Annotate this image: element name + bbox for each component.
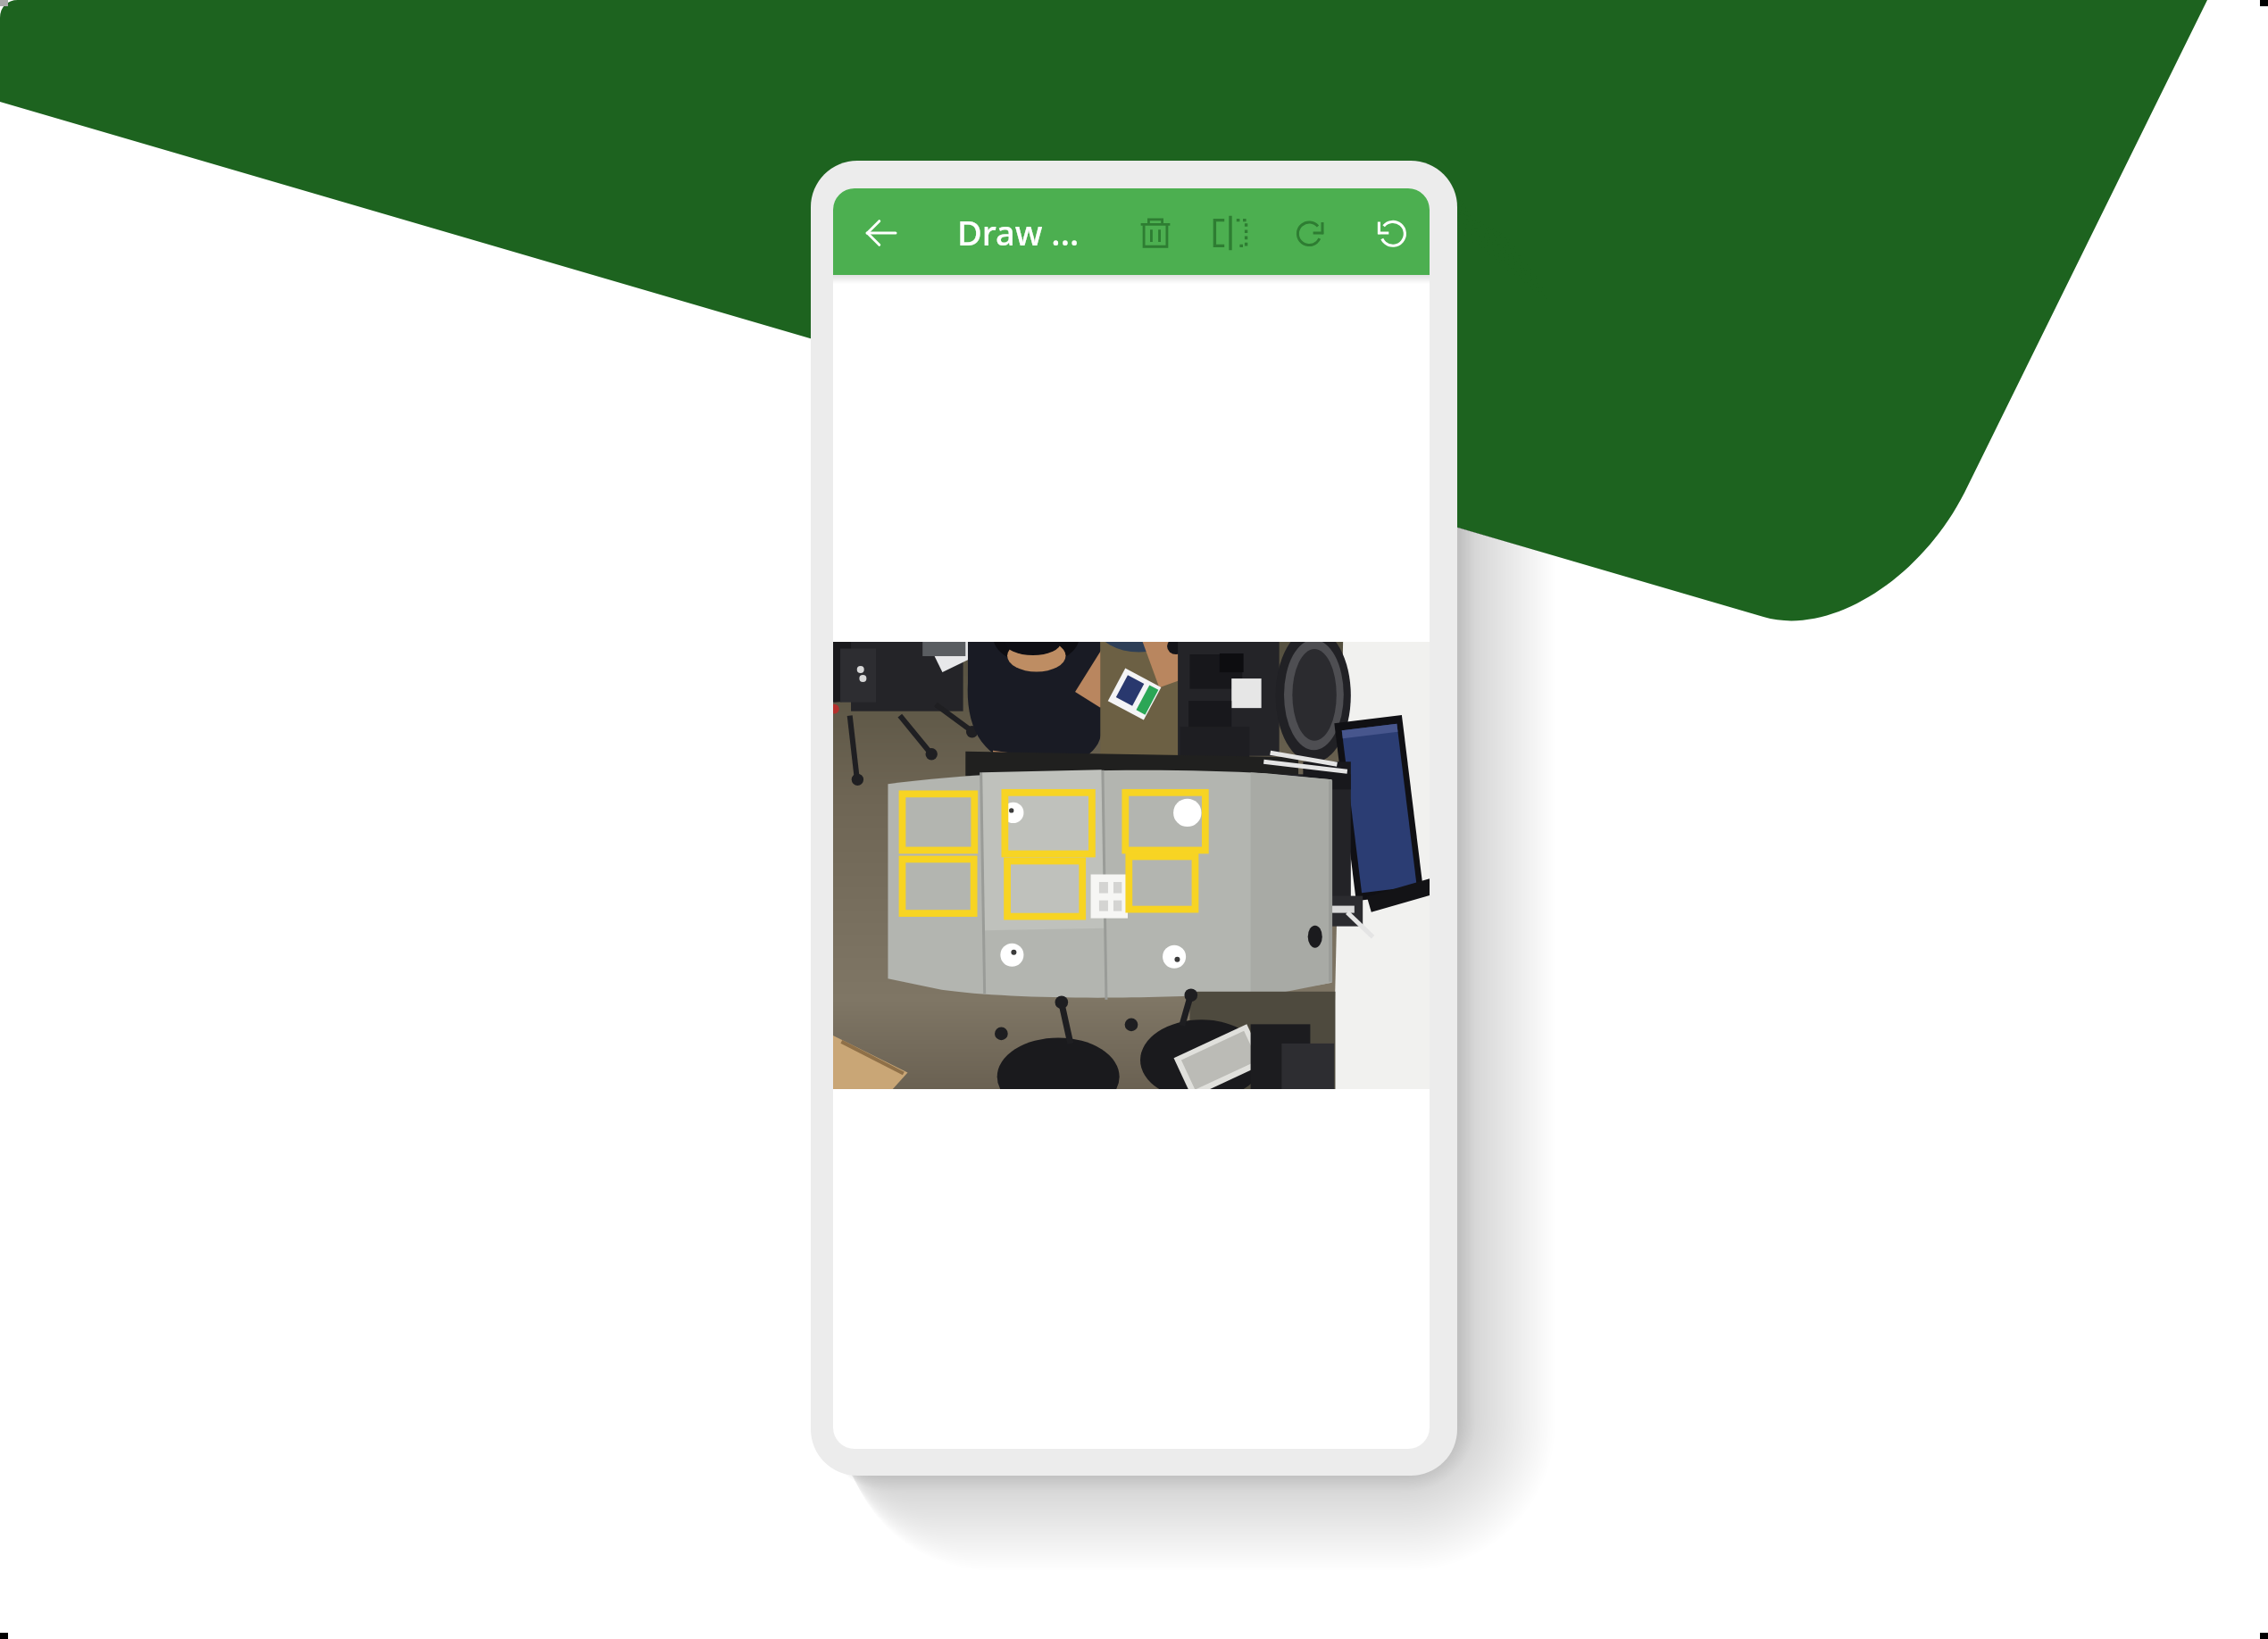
button[interactable]: Annotated photo canvas bbox=[833, 642, 1430, 1089]
button[interactable]: Undo bbox=[1356, 199, 1424, 267]
staticText: Draw ... bbox=[957, 209, 1080, 255]
button[interactable]: Flip bbox=[1197, 199, 1264, 267]
button[interactable]: Back bbox=[847, 199, 915, 267]
button[interactable]: Redo bbox=[1278, 199, 1346, 267]
button[interactable]: Delete bbox=[1121, 199, 1189, 267]
